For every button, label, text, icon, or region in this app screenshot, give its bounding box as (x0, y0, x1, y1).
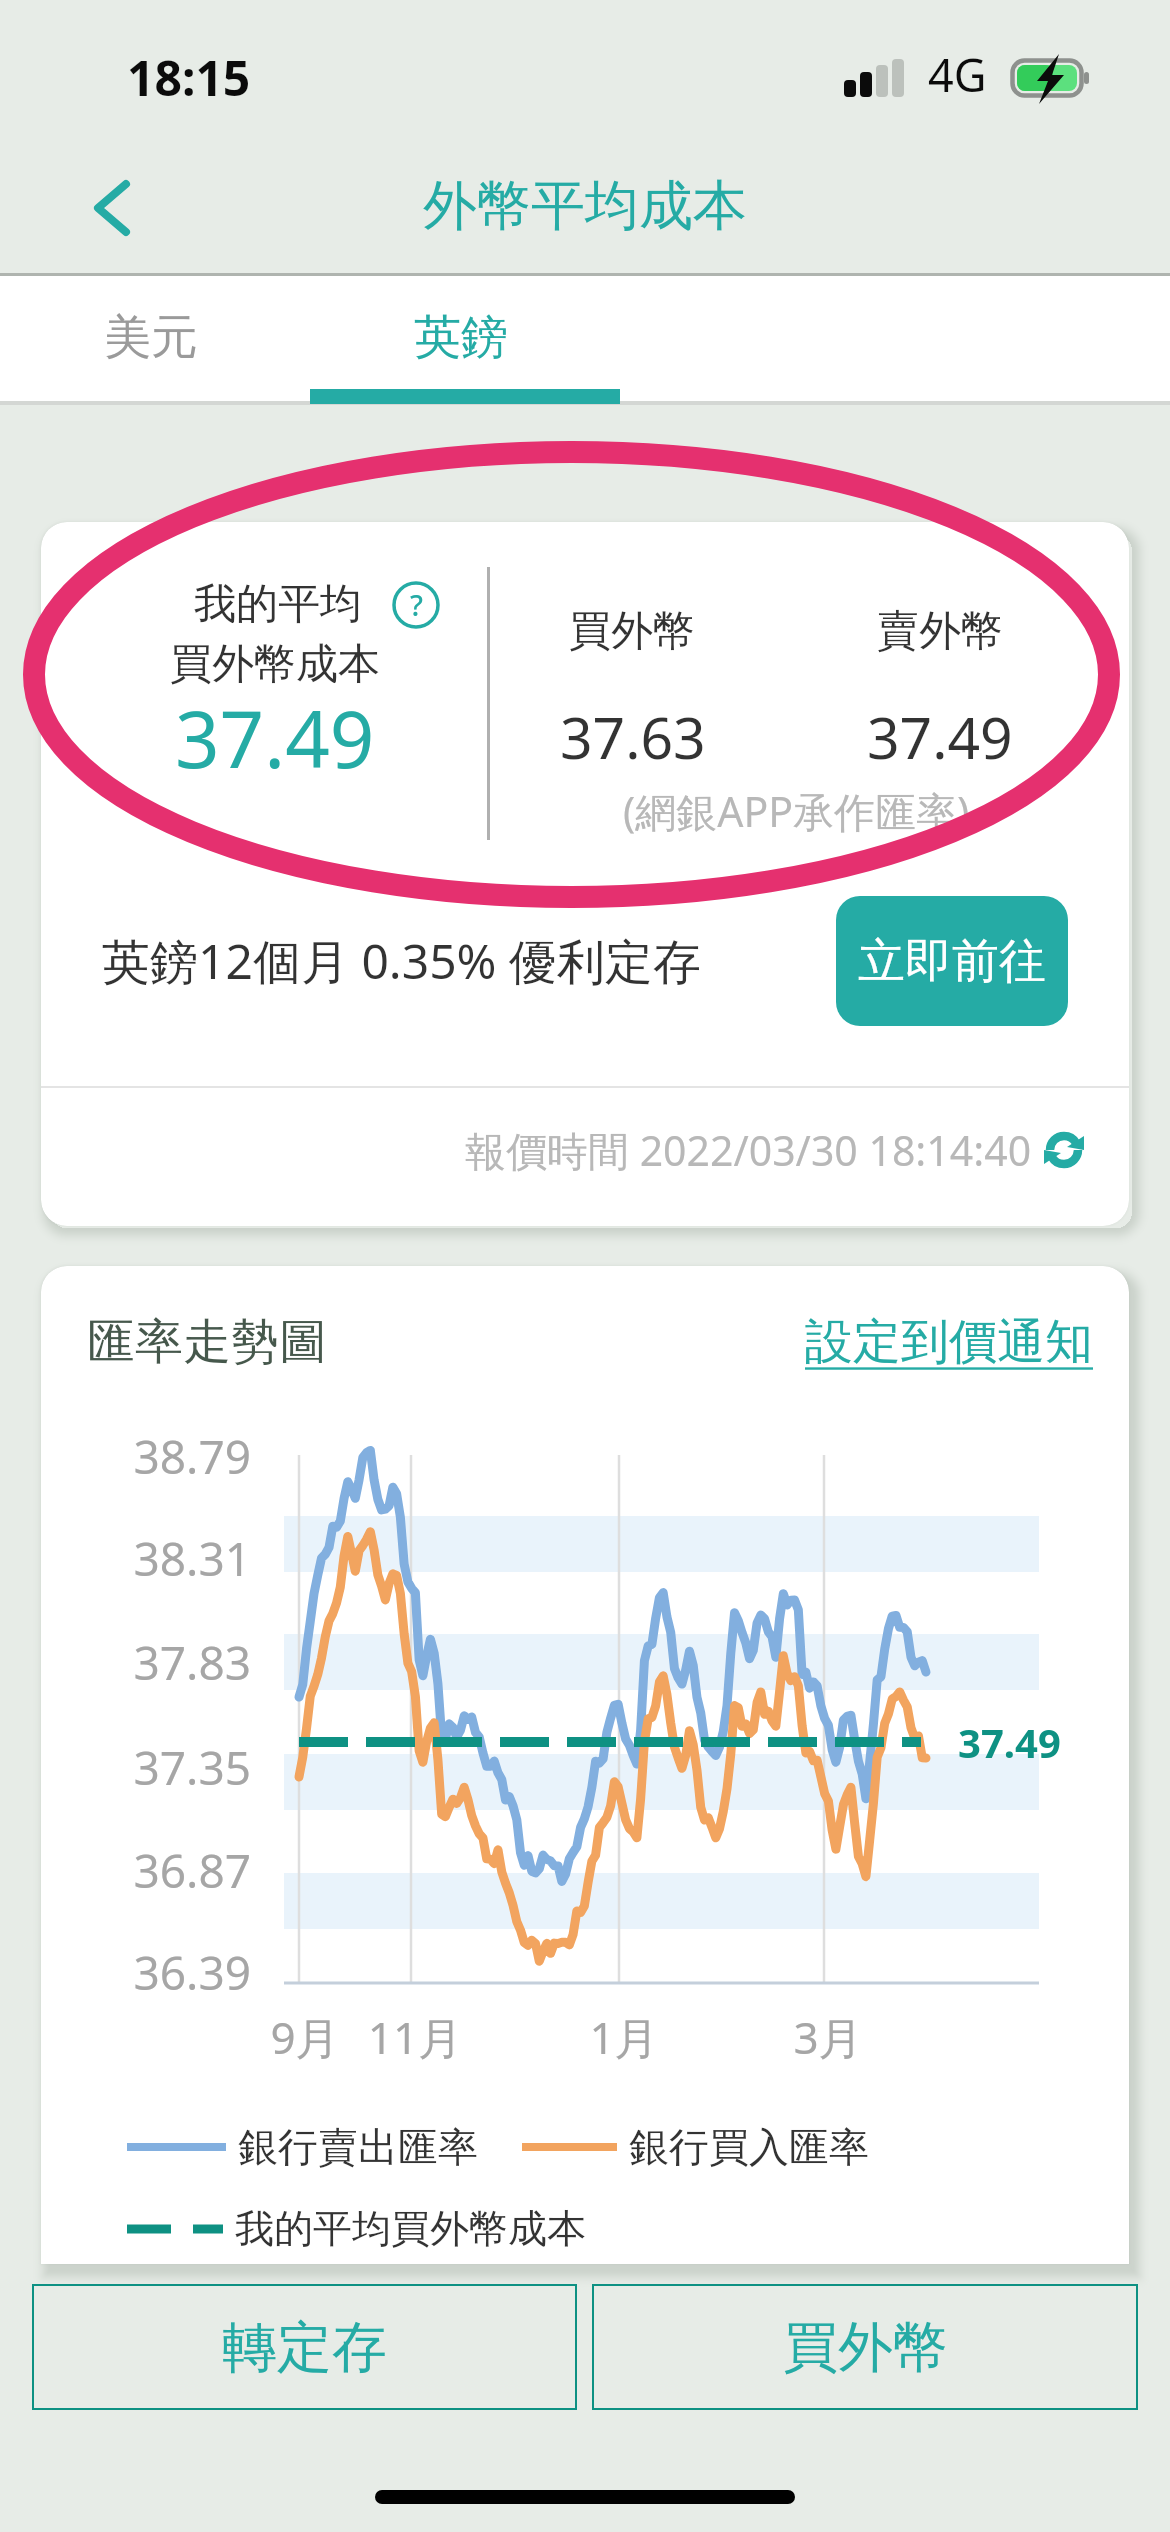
staticText: 38.79 (111, 1425, 251, 1488)
staticText: 18:15 (127, 45, 251, 110)
staticText: 37.49 (175, 685, 375, 791)
staticText: 我的平均 (194, 578, 362, 631)
staticText: 37.35 (111, 1736, 251, 1799)
staticText: 英鎊 (414, 308, 508, 367)
staticText: ? (410, 585, 423, 624)
staticText: 立即前往 (858, 932, 1046, 991)
staticText: 36.39 (111, 1941, 251, 2004)
staticText: 3月 (758, 2007, 898, 2067)
button[interactable]: 美元 (0, 276, 310, 389)
staticText: 4G (928, 44, 987, 105)
staticText: 買外幣 (569, 605, 695, 658)
staticText: 1月 (554, 2007, 694, 2067)
button[interactable]: 說明 (392, 581, 440, 629)
staticText: 38.31 (111, 1527, 251, 1590)
staticText: 銀行賣出匯率 (238, 2122, 478, 2172)
staticText: 匯率走勢圖 (87, 1312, 327, 1372)
button[interactable]: 轉定存 (32, 2284, 577, 2410)
button[interactable]: 英鎊 (310, 276, 620, 389)
staticText: 買外幣 (783, 2313, 948, 2382)
staticText: 轉定存 (222, 2313, 387, 2382)
button[interactable]: Back (61, 153, 171, 263)
staticText: 買外幣成本 (170, 638, 380, 691)
staticText: 37.49 (958, 1715, 1061, 1769)
staticText: 銀行買入匯率 (629, 2122, 869, 2172)
staticText: 36.87 (111, 1839, 251, 1902)
staticText: 37.63 (560, 698, 706, 776)
staticText: 賣外幣 (877, 605, 1003, 658)
staticText: 11月 (345, 2007, 485, 2067)
staticText: 英鎊12個月 0.35% 優利定存 (102, 928, 701, 994)
button[interactable]: 設定到價通知 (805, 1312, 1093, 1372)
button[interactable]: 立即前往 (836, 896, 1068, 1026)
staticText: 37.83 (111, 1631, 251, 1694)
staticText: 外幣平均成本 (423, 172, 747, 240)
staticText: 我的平均買外幣成本 (235, 2204, 586, 2253)
staticText: 37.49 (867, 698, 1013, 776)
staticText: 報價時間 2022/03/30 18:14:40 (465, 1122, 1032, 1178)
button[interactable]: 買外幣 (592, 2284, 1138, 2410)
staticText: 設定到價通知 (805, 1312, 1093, 1372)
staticText: 9月 (235, 2007, 375, 2067)
staticText: (網銀APP承作匯率) (623, 783, 970, 839)
staticText: 美元 (104, 308, 198, 367)
button[interactable]: 重新整理 (1044, 1130, 1084, 1170)
